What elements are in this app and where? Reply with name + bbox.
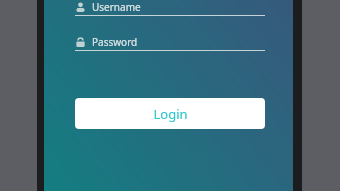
staticText: Login: [153, 105, 188, 123]
staticText: Username: [92, 0, 141, 14]
button[interactable]: Password: [75, 34, 265, 50]
button[interactable]: Login: [75, 98, 265, 129]
button[interactable]: Username: [75, 0, 265, 22]
staticText: Password: [92, 35, 138, 49]
